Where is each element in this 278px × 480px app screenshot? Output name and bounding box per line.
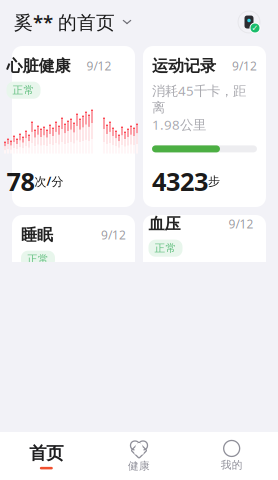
button[interactable]: 我的: [185, 432, 278, 480]
staticText: 步: [208, 174, 220, 188]
staticText: 正常: [154, 242, 176, 255]
button[interactable]: 健康: [93, 432, 185, 480]
button[interactable]: 奚** 的首页: [14, 10, 132, 34]
staticText: 心脏健康: [6, 56, 70, 76]
staticText: 9/12: [228, 216, 253, 232]
staticText: 我的: [221, 458, 243, 471]
button[interactable]: 心脏健康: [12, 46, 135, 207]
button[interactable]: 血压: [143, 215, 266, 376]
staticText: 睡眠: [21, 225, 53, 245]
button[interactable]: 设备已连接: [236, 9, 262, 35]
button[interactable]: 睡眠: [12, 215, 135, 376]
staticText: 健康: [128, 459, 150, 472]
staticText: 运动记录: [152, 56, 216, 76]
staticText: 78: [6, 164, 34, 198]
button[interactable]: 首页: [0, 432, 93, 480]
staticText: 9/12: [232, 58, 257, 74]
staticText: 正常: [158, 422, 180, 435]
staticText: 消耗45千卡，距离: [152, 82, 246, 116]
staticText: 次/分: [34, 173, 63, 189]
staticText: 1.98公里: [152, 116, 206, 133]
staticText: 首页: [29, 443, 63, 464]
staticText: ✓: [251, 23, 258, 33]
staticText: 9/12: [101, 227, 126, 243]
staticText: 正常: [27, 253, 49, 266]
staticText: 正常: [12, 84, 34, 97]
button[interactable]: 体温: [143, 384, 266, 480]
staticText: 9/12: [86, 58, 111, 74]
staticText: 血压: [148, 214, 180, 234]
staticText: 奚** 的首页: [14, 10, 115, 34]
staticText: 正常: [27, 422, 49, 435]
staticText: 4323: [152, 164, 208, 198]
button[interactable]: 血氧: [12, 384, 135, 480]
button[interactable]: 运动记录: [143, 46, 266, 207]
